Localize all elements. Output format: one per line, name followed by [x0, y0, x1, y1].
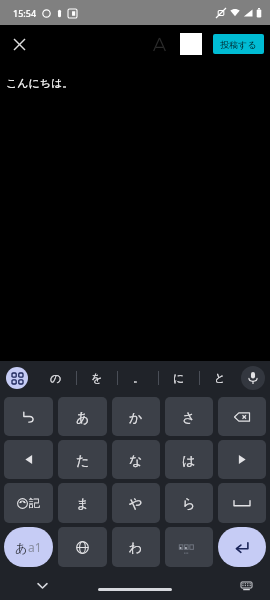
button[interactable]: あ — [58, 397, 107, 436]
staticText: a1 — [28, 539, 42, 555]
button[interactable]: Hide keyboard — [32, 575, 52, 595]
button[interactable]: ま — [58, 483, 107, 523]
button[interactable]: に — [159, 361, 199, 394]
button[interactable]: わ — [112, 527, 160, 567]
button[interactable]: の — [36, 361, 76, 394]
staticText: 記 — [29, 496, 40, 510]
button[interactable]: Move cursor left — [4, 440, 53, 479]
staticText: わ — [129, 539, 143, 555]
button[interactable]: Undo — [4, 397, 53, 436]
button[interactable]: Change keyboard — [236, 575, 256, 595]
staticText: 投稿する — [220, 39, 257, 50]
staticText: あ — [76, 409, 90, 425]
button[interactable]: 投稿する — [213, 34, 264, 54]
button[interactable]: と — [200, 361, 240, 394]
staticText: や — [129, 495, 143, 511]
staticText: 。 — [133, 371, 144, 385]
button[interactable]: Close — [6, 31, 32, 57]
button[interactable]: さ — [165, 397, 213, 436]
staticText: か — [129, 409, 143, 425]
staticText: 15:54 — [13, 7, 37, 19]
button[interactable]: Emoji and symbols — [4, 483, 53, 523]
button[interactable]: Keyboard menu — [6, 367, 28, 389]
button[interactable]: を — [77, 361, 117, 394]
button[interactable]: や — [112, 483, 160, 523]
staticText: ま — [76, 495, 90, 511]
staticText: と — [214, 371, 226, 385]
button[interactable]: な — [112, 440, 160, 479]
staticText: た — [76, 452, 90, 468]
staticText: ら — [182, 495, 196, 511]
button[interactable]: Space — [218, 483, 266, 523]
button[interactable]: は — [165, 440, 213, 479]
button[interactable]: ら — [165, 483, 213, 523]
button[interactable]: Switch language — [58, 527, 107, 567]
staticText: に — [173, 371, 185, 385]
staticText: さ — [182, 409, 196, 425]
staticText: を — [91, 371, 103, 385]
button[interactable]: Delete — [218, 397, 266, 436]
button[interactable]: Punctuation — [165, 527, 213, 567]
staticText: こんにちは。 — [6, 76, 74, 90]
staticText: は — [182, 452, 196, 468]
button[interactable]: Text formatting — [146, 31, 172, 57]
button[interactable]: 。 — [118, 361, 158, 394]
button[interactable]: た — [58, 440, 107, 479]
staticText: あ — [15, 540, 28, 555]
staticText: な — [129, 452, 143, 468]
button[interactable]: Voice input — [241, 366, 265, 390]
staticText: の — [50, 371, 62, 385]
button[interactable]: Enter — [218, 527, 266, 567]
button[interactable]: か — [112, 397, 160, 436]
button[interactable]: Move cursor right — [218, 440, 266, 479]
button[interactable]: Switch input mode — [4, 527, 53, 567]
